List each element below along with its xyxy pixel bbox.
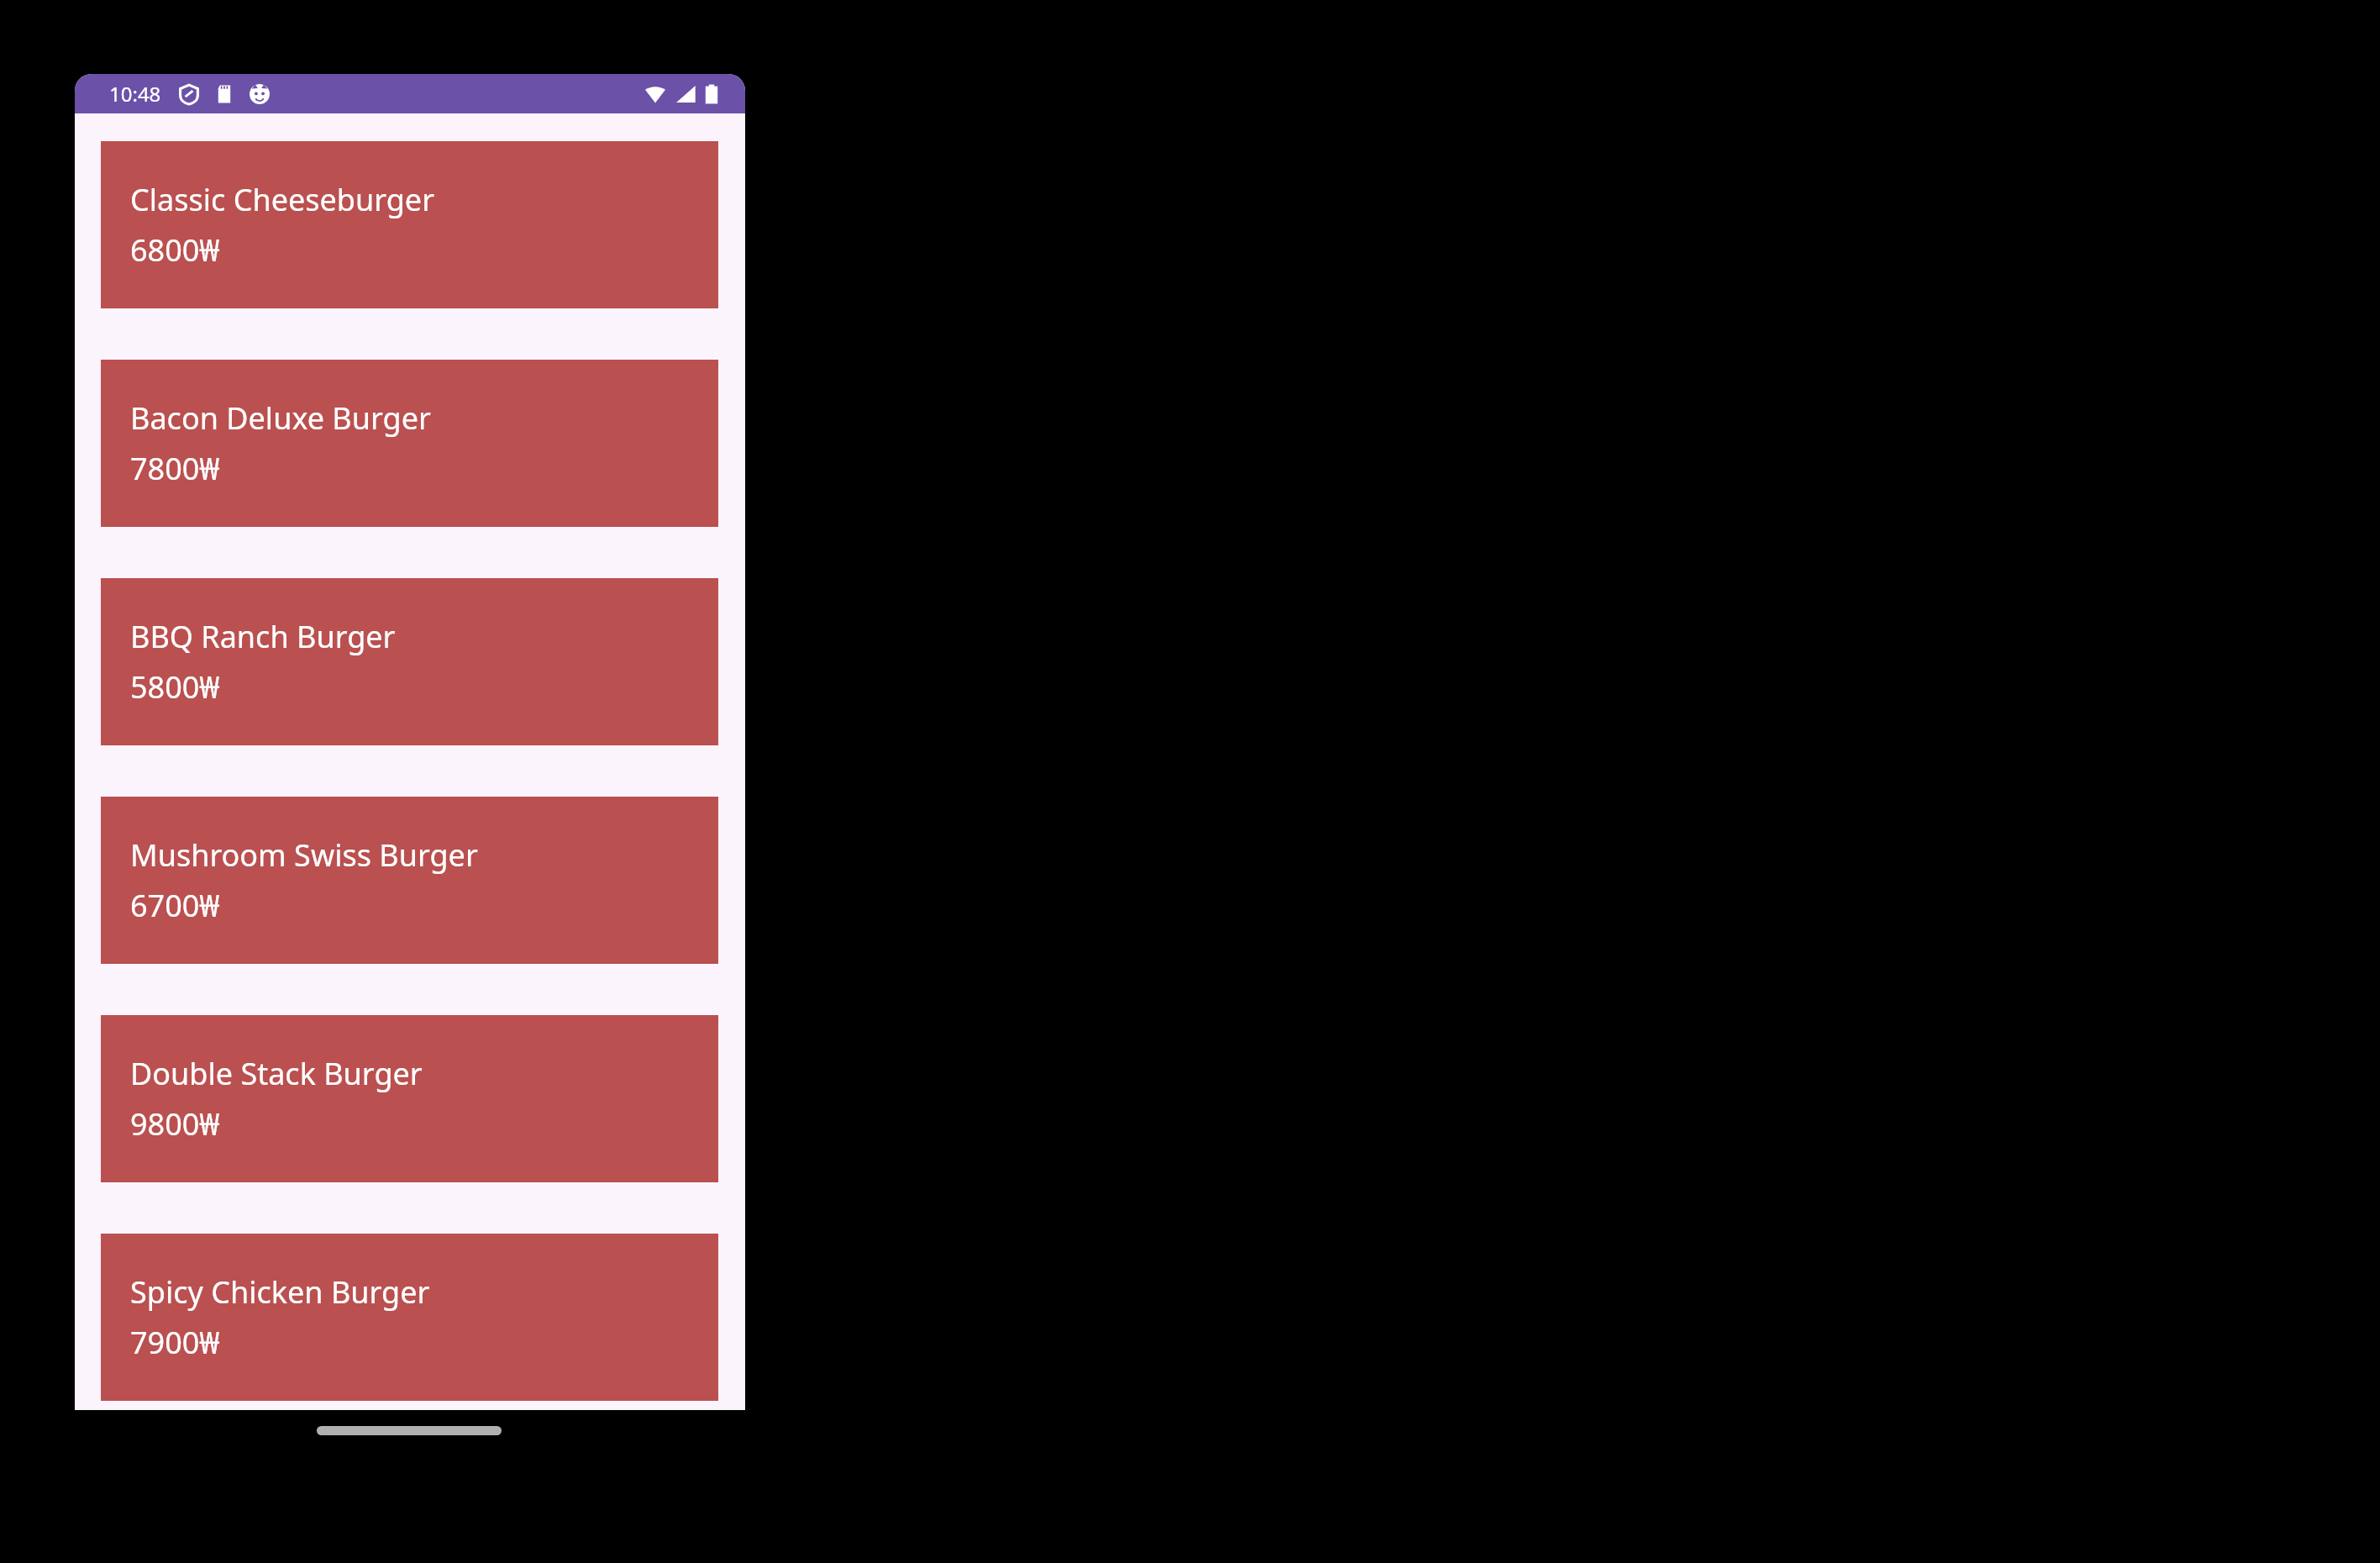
button[interactable]: Bacon Deluxe Burger: [101, 360, 718, 527]
staticText: Classic Cheeseburger: [130, 179, 435, 220]
staticText: 7900₩: [130, 1322, 220, 1363]
button[interactable]: Classic Cheeseburger: [101, 141, 718, 308]
button[interactable]: Double Stack Burger: [101, 1015, 718, 1182]
staticText: BBQ Ranch Burger: [130, 616, 396, 657]
button[interactable]: Spicy Chicken Burger: [101, 1234, 718, 1401]
button[interactable]: BBQ Ranch Burger: [101, 578, 718, 745]
button[interactable]: Mushroom Swiss Burger: [101, 797, 718, 964]
staticText: 5800₩: [130, 666, 220, 708]
staticText: Double Stack Burger: [130, 1053, 423, 1094]
staticText: 7800₩: [130, 448, 220, 489]
staticText: 10:48: [109, 80, 161, 108]
staticText: 9800₩: [130, 1103, 220, 1145]
staticText: Mushroom Swiss Burger: [130, 834, 478, 876]
staticText: Spicy Chicken Burger: [130, 1271, 430, 1313]
staticText: 6800₩: [130, 229, 220, 271]
staticText: 6700₩: [130, 885, 220, 926]
staticText: Bacon Deluxe Burger: [130, 397, 431, 439]
